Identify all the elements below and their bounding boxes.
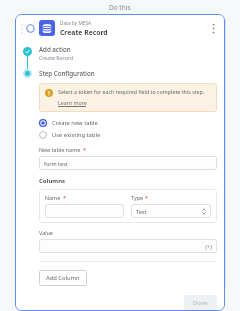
button[interactable]: Add Column [39, 270, 87, 286]
button[interactable]: Done [184, 295, 217, 311]
staticText: Text [136, 208, 147, 215]
staticText: Select a token for each required field t… [58, 88, 205, 95]
staticText: {+} [205, 243, 213, 250]
staticText: Do this [109, 3, 131, 12]
button[interactable]: More options [206, 21, 220, 35]
staticText: * [83, 146, 86, 153]
button[interactable]: Data by MESA [15, 14, 225, 42]
button[interactable]: Insert token [205, 243, 213, 250]
button[interactable]: form test [39, 156, 217, 170]
staticText: form test [44, 160, 68, 167]
staticText: New table name [39, 146, 81, 153]
button[interactable]: Create new table [39, 119, 98, 127]
staticText: Value [39, 229, 53, 236]
staticText: Create Record [60, 28, 108, 37]
staticText: Use existing table [52, 131, 101, 139]
staticText: Data by MESA [60, 20, 92, 27]
staticText: Done [193, 299, 208, 307]
staticText: Learn more [58, 99, 87, 106]
button[interactable]: Text [131, 204, 211, 218]
staticText: Name [45, 194, 61, 201]
staticText: * [63, 194, 66, 201]
staticText: Add action [39, 45, 71, 53]
staticText: Type [131, 194, 143, 201]
button[interactable]: Learn more [58, 99, 87, 107]
staticText: Step Configuration [39, 69, 95, 77]
button[interactable]: Use existing table [39, 131, 101, 139]
button[interactable]: Add action [39, 45, 217, 61]
button[interactable] [45, 204, 124, 218]
staticText: Columns [39, 177, 66, 185]
staticText: Add Column [46, 274, 80, 282]
staticText: Create new table [52, 119, 98, 127]
button[interactable]: Insert token [39, 239, 217, 253]
button[interactable]: Step Configuration [39, 69, 217, 77]
staticText: Create Record [39, 54, 74, 61]
staticText: * [145, 194, 148, 201]
